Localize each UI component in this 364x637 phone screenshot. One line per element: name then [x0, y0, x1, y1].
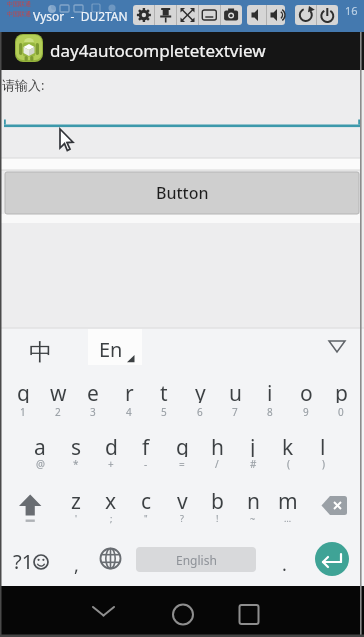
- staticText: t: [160, 379, 168, 403]
- button[interactable]: [88, 329, 142, 365]
- staticText: j: [250, 433, 256, 457]
- staticText: o: [300, 379, 313, 403]
- button[interactable]: 中: [25, 338, 55, 365]
- button[interactable]: q: [5, 379, 41, 403]
- button[interactable]: ,: [66, 551, 86, 579]
- staticText: @: [36, 457, 45, 471]
- button[interactable]: y: [182, 379, 218, 403]
- staticText: d: [105, 433, 118, 457]
- button[interactable]: [15, 34, 43, 62]
- button[interactable]: v: [164, 487, 200, 511]
- staticText: w: [50, 379, 67, 403]
- staticText: #: [250, 457, 257, 471]
- staticText: 请输入:: [2, 76, 45, 92]
- button[interactable]: Button: [5, 172, 359, 214]
- button[interactable]: r: [111, 379, 147, 403]
- button[interactable]: [240, 598, 276, 630]
- button[interactable]: b: [199, 487, 235, 511]
- button[interactable]: g: [164, 433, 200, 457]
- staticText: g: [176, 433, 189, 457]
- staticText: c: [141, 487, 152, 511]
- staticText: 0: [338, 405, 344, 419]
- staticText: /: [215, 457, 219, 471]
- staticText: =: [179, 457, 185, 471]
- button[interactable]: [86, 598, 122, 630]
- staticText: z: [71, 487, 81, 511]
- staticText: !: [216, 512, 219, 524]
- staticText: ?: [180, 512, 184, 524]
- button[interactable]: English: [136, 547, 256, 572]
- staticText: 1: [20, 405, 26, 419]
- button[interactable]: d: [93, 433, 129, 457]
- button[interactable]: i: [252, 379, 288, 403]
- staticText: (: [287, 457, 290, 471]
- button[interactable]: e: [75, 379, 111, 403]
- staticText: …: [284, 512, 292, 524]
- button[interactable]: o: [288, 379, 324, 403]
- button[interactable]: n: [235, 487, 271, 511]
- staticText: u: [229, 379, 242, 403]
- button[interactable]: x: [93, 487, 129, 511]
- staticText: i: [267, 379, 273, 403]
- staticText: r: [125, 379, 134, 403]
- staticText: *: [73, 457, 79, 471]
- staticText: 4: [126, 405, 132, 419]
- staticText: x: [105, 487, 117, 511]
- button[interactable]: l: [305, 433, 341, 457]
- button[interactable]: t: [146, 379, 182, 403]
- button[interactable]: m: [270, 487, 306, 511]
- button[interactable]: s: [58, 433, 94, 457]
- staticText: s: [71, 433, 82, 457]
- button[interactable]: [133, 5, 242, 25]
- staticText: ': [75, 512, 78, 524]
- button[interactable]: [166, 598, 202, 630]
- button[interactable]: [2, 85, 360, 125]
- button[interactable]: [94, 544, 128, 576]
- button[interactable]: z: [58, 487, 94, 511]
- button[interactable]: .: [274, 550, 294, 578]
- button[interactable]: [322, 330, 354, 362]
- staticText: Vysor - DU2TAN: [33, 8, 128, 24]
- button[interactable]: w: [40, 379, 76, 403]
- button[interactable]: [10, 480, 54, 524]
- button[interactable]: h: [199, 433, 235, 457]
- button[interactable]: j: [235, 433, 271, 457]
- button[interactable]: [314, 482, 356, 522]
- button[interactable]: [315, 542, 349, 576]
- staticText: 2: [55, 405, 61, 419]
- staticText: +: [108, 457, 114, 471]
- staticText: ;: [110, 512, 113, 524]
- staticText: q: [17, 379, 30, 403]
- button[interactable]: k: [270, 433, 306, 457]
- staticText: n: [247, 487, 260, 511]
- button[interactable]: [247, 5, 285, 25]
- staticText: y: [195, 379, 206, 403]
- staticText: Button: [156, 182, 209, 204]
- staticText: p: [335, 379, 348, 403]
- staticText: 8: [267, 405, 273, 419]
- staticText: h: [211, 433, 224, 457]
- staticText: English: [176, 552, 217, 568]
- staticText: En: [99, 336, 123, 360]
- staticText: ,: [74, 553, 79, 578]
- button[interactable]: u: [217, 379, 253, 403]
- staticText: e: [87, 379, 99, 403]
- staticText: k: [282, 433, 294, 457]
- staticText: 3: [90, 405, 96, 419]
- staticText: a: [34, 433, 46, 457]
- staticText: l: [320, 433, 326, 457]
- button[interactable]: f: [128, 433, 164, 457]
- button[interactable]: c: [128, 487, 164, 511]
- staticText: 中: [29, 338, 52, 365]
- staticText: ?1: [13, 548, 34, 572]
- button[interactable]: a: [22, 433, 58, 457]
- button[interactable]: p: [323, 379, 359, 403]
- staticText: -: [144, 457, 148, 471]
- button[interactable]: ?1: [9, 548, 37, 572]
- staticText: 5: [161, 405, 167, 419]
- staticText: 6: [197, 405, 203, 419]
- staticText: ): [322, 457, 325, 471]
- button[interactable]: [295, 5, 338, 25]
- staticText: m: [278, 487, 298, 511]
- staticText: ": [144, 512, 148, 524]
